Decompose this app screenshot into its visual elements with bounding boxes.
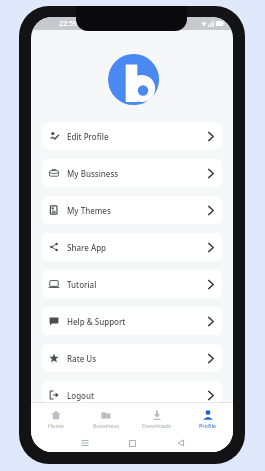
button[interactable]: Recent apps xyxy=(76,437,94,449)
button[interactable]: Edit Profile xyxy=(42,122,222,150)
button[interactable]: Back xyxy=(172,437,190,449)
staticText: Rate Us xyxy=(67,353,97,364)
button[interactable]: Tutorial xyxy=(42,270,222,298)
staticText: My Bussiness xyxy=(67,168,119,179)
button[interactable]: Home xyxy=(31,403,81,430)
staticText: Downloads xyxy=(142,422,172,429)
staticText: My Themes xyxy=(67,205,111,216)
staticText: Logout xyxy=(67,390,95,401)
button[interactable]: Rate Us xyxy=(42,344,222,372)
button[interactable]: Bussiness xyxy=(81,403,131,430)
staticText: Tutorial xyxy=(67,279,97,290)
staticText: Help & Support xyxy=(67,316,126,327)
staticText: Share App xyxy=(67,242,107,253)
button[interactable]: Home xyxy=(123,437,141,449)
button[interactable]: My Bussiness xyxy=(42,159,222,187)
staticText: Home xyxy=(48,422,64,429)
button[interactable]: Logout xyxy=(42,381,222,409)
button[interactable]: Share App xyxy=(42,233,222,261)
staticText: Edit Profile xyxy=(67,131,109,142)
button[interactable]: My Themes xyxy=(42,196,222,224)
staticText: Profile xyxy=(199,422,217,429)
button[interactable]: Profile xyxy=(182,403,233,430)
button[interactable]: Help & Support xyxy=(42,307,222,335)
staticText: Bussiness xyxy=(93,422,119,429)
button[interactable]: Downloads xyxy=(131,403,182,430)
staticText: 22:59 xyxy=(59,19,77,29)
